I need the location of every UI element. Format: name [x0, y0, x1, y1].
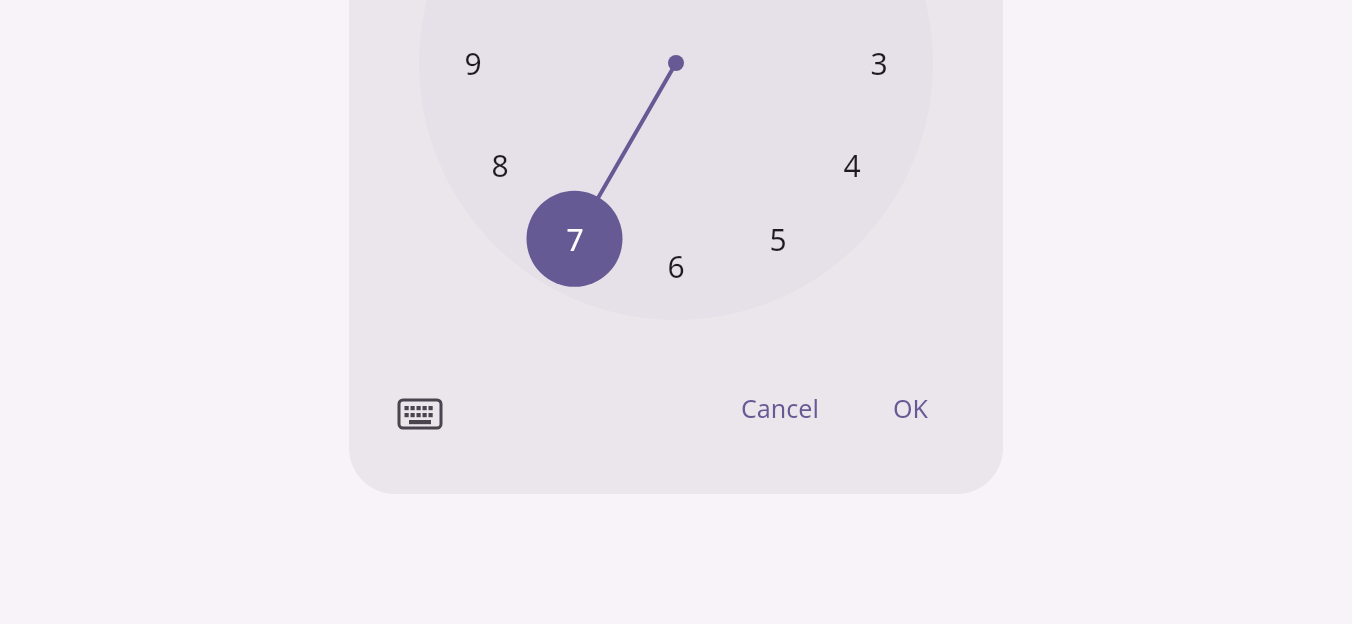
button[interactable]: 8: [476, 141, 524, 189]
button[interactable]: Cancel: [718, 386, 842, 430]
button[interactable]: 3: [855, 39, 903, 87]
button[interactable]: 6: [652, 242, 700, 290]
staticText: Cancel: [741, 391, 819, 425]
button[interactable]: 7: [551, 215, 599, 263]
staticText: 7: [566, 219, 584, 260]
button[interactable]: OK: [872, 386, 950, 430]
button[interactable]: 4: [828, 141, 876, 189]
staticText: 3: [870, 43, 888, 84]
button[interactable]: 9: [449, 39, 497, 87]
staticText: 4: [843, 145, 861, 186]
staticText: 9: [464, 43, 482, 84]
staticText: 8: [491, 145, 509, 186]
button[interactable]: Switch to text input: [396, 390, 444, 438]
staticText: 5: [769, 219, 787, 260]
staticText: OK: [893, 391, 929, 425]
button[interactable]: 5: [754, 215, 802, 263]
staticText: 6: [667, 246, 685, 287]
